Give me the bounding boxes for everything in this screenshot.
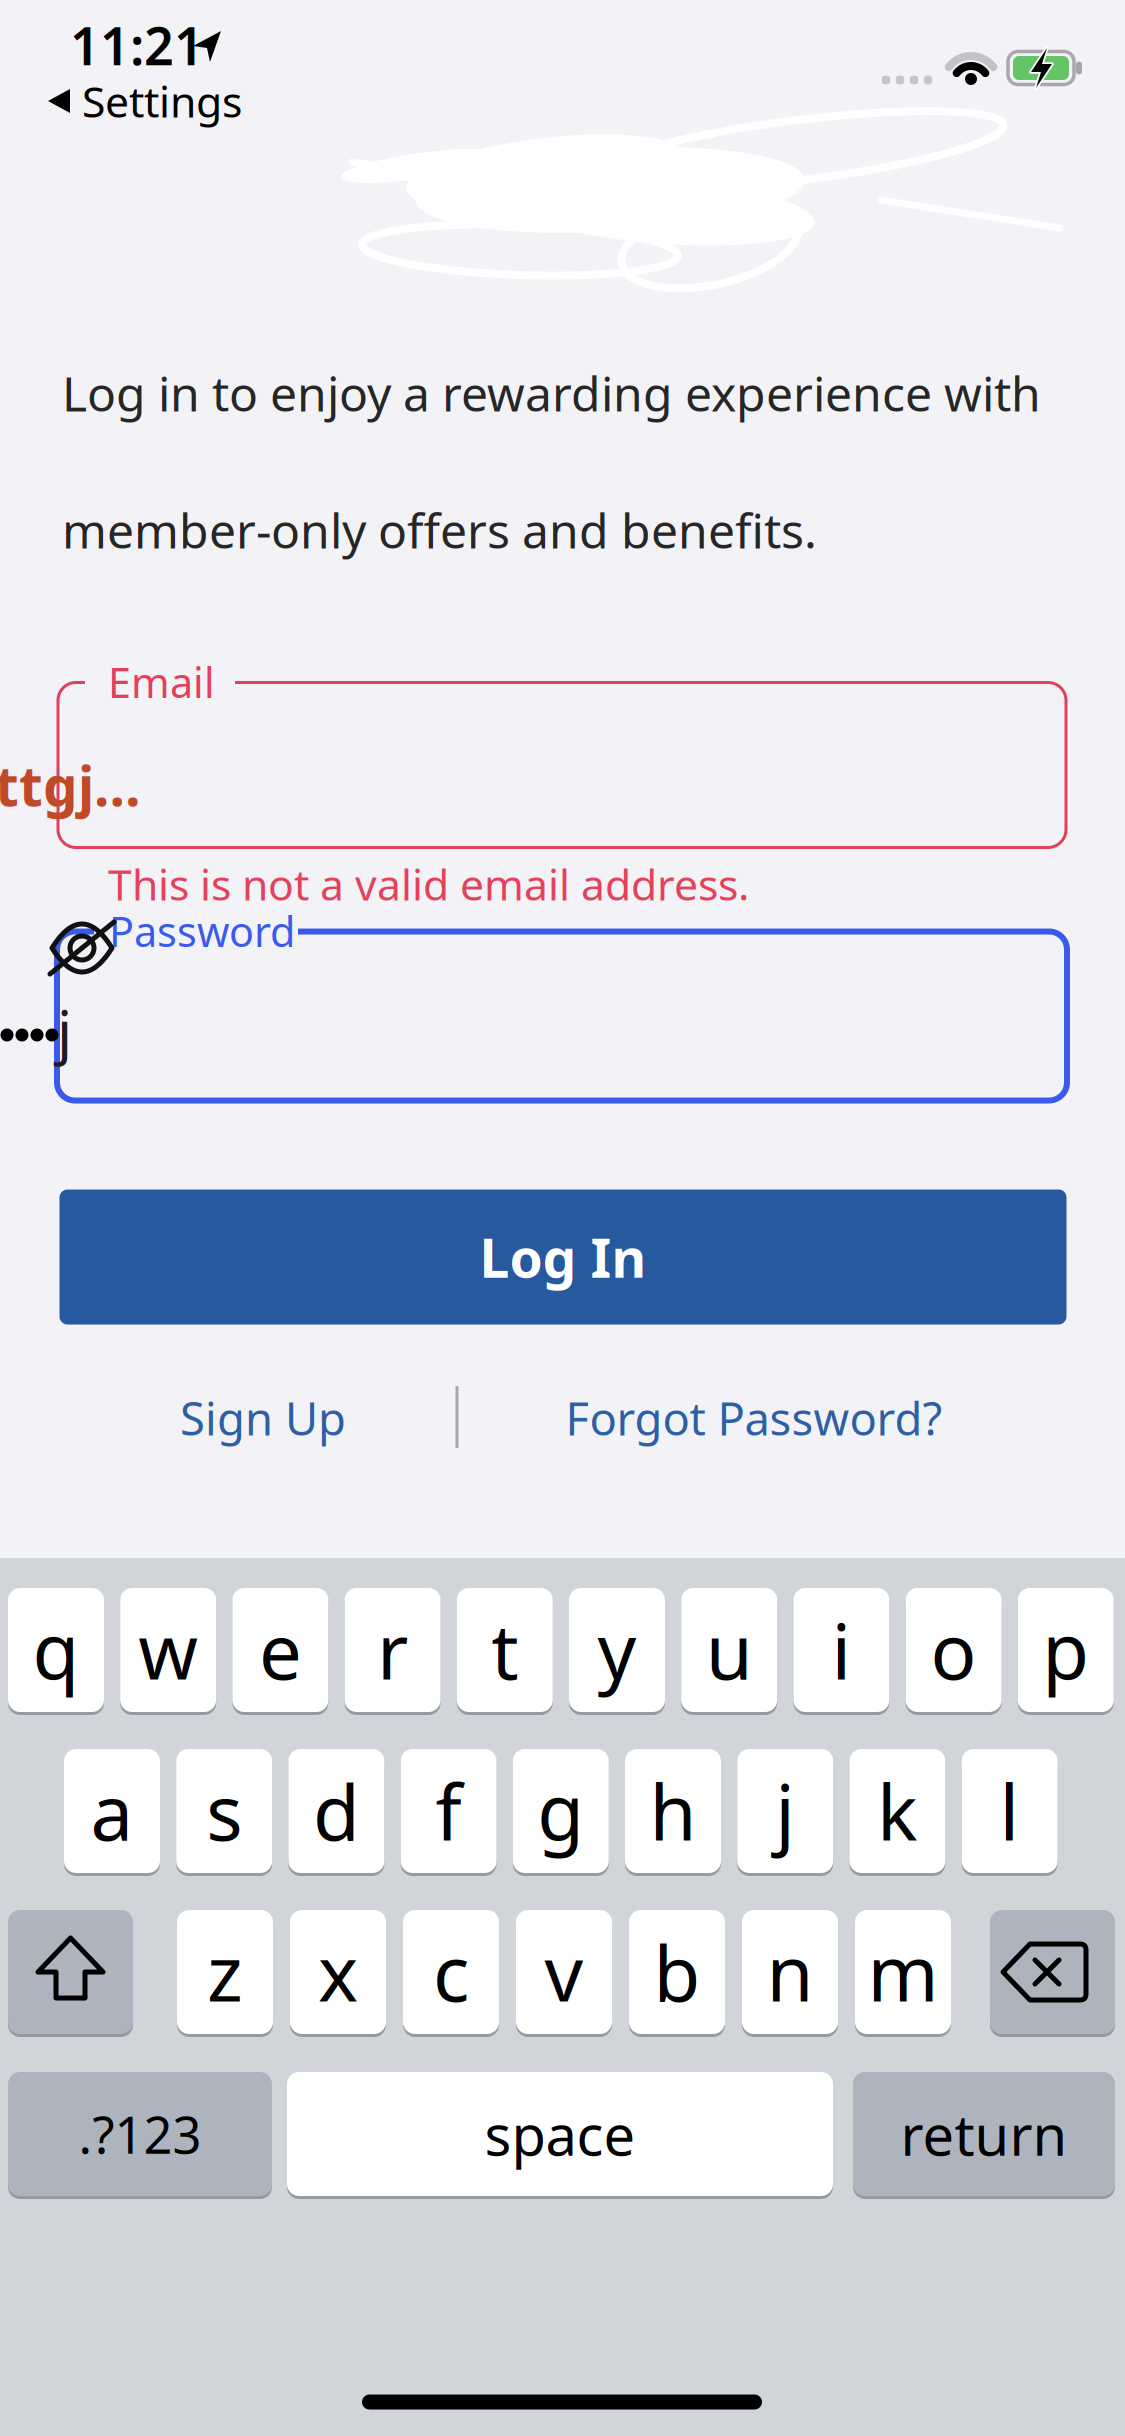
- button[interactable]: k: [849, 1747, 945, 1875]
- staticText: s: [206, 1760, 242, 1861]
- staticText: This is not a valid email address.: [108, 856, 749, 912]
- staticText: z: [207, 1921, 243, 2022]
- button[interactable]: g: [513, 1747, 609, 1875]
- button[interactable]: w: [120, 1586, 216, 1714]
- staticText: c: [433, 1921, 469, 2022]
- staticText: g: [537, 1760, 584, 1861]
- staticText: Log in to enjoy a rewarding experience w…: [62, 361, 1041, 425]
- button[interactable]: c: [403, 1908, 499, 2036]
- staticText: j: [57, 991, 72, 1069]
- staticText: o: [931, 1599, 977, 1700]
- staticText: x: [318, 1921, 358, 2022]
- button[interactable]: .?123: [8, 2070, 272, 2198]
- staticText: u: [706, 1599, 753, 1700]
- button[interactable]: p: [1018, 1586, 1114, 1714]
- staticText: Forgot Password?: [565, 1388, 942, 1448]
- button[interactable]: t: [457, 1586, 553, 1714]
- staticText: b: [653, 1921, 700, 2022]
- button[interactable]: v: [516, 1908, 612, 2036]
- staticText: Log In: [479, 1222, 646, 1292]
- button[interactable]: n: [742, 1908, 838, 2036]
- button[interactable]: x: [290, 1908, 386, 2036]
- staticText: .?123: [78, 2100, 201, 2168]
- staticText: f: [436, 1760, 462, 1861]
- button[interactable]: [990, 1908, 1115, 2036]
- staticText: e: [259, 1599, 302, 1700]
- staticText: r: [377, 1599, 408, 1700]
- button[interactable]: Forgot Password?: [565, 1388, 942, 1448]
- button[interactable]: s: [176, 1747, 272, 1875]
- button[interactable]: a: [64, 1747, 160, 1875]
- staticText: 11:21: [70, 10, 204, 80]
- button[interactable]: j: [737, 1747, 833, 1875]
- button[interactable]: Log In: [59, 1189, 1066, 1324]
- button[interactable]: o: [906, 1586, 1002, 1714]
- button[interactable]: h: [625, 1747, 721, 1875]
- button[interactable]: [8, 1908, 133, 2036]
- button[interactable]: l: [962, 1747, 1058, 1875]
- button[interactable]: q: [8, 1586, 104, 1714]
- staticText: Password: [109, 904, 295, 958]
- button[interactable]: z: [177, 1908, 273, 2036]
- button[interactable]: m: [855, 1908, 951, 2036]
- button[interactable]: u: [681, 1586, 777, 1714]
- button[interactable]: i: [793, 1586, 889, 1714]
- staticText: Email: [108, 655, 215, 709]
- staticText: w: [138, 1599, 198, 1700]
- staticText: space: [484, 2097, 635, 2171]
- button[interactable]: e: [232, 1586, 328, 1714]
- staticText: q: [32, 1599, 79, 1700]
- button[interactable]: [58, 682, 1066, 847]
- staticText: m: [867, 1921, 938, 2022]
- staticText: h: [649, 1760, 696, 1861]
- staticText: j: [775, 1760, 795, 1861]
- staticText: Sign Up: [180, 1388, 346, 1448]
- button[interactable]: [44, 916, 120, 980]
- staticText: k: [877, 1760, 918, 1861]
- staticText: member-only offers and benefits.: [62, 498, 817, 562]
- button[interactable]: y: [569, 1586, 665, 1714]
- staticText: ttgj…: [0, 749, 141, 821]
- staticText: d: [313, 1760, 360, 1861]
- button[interactable]: [57, 931, 1067, 1100]
- button[interactable]: f: [401, 1747, 497, 1875]
- button[interactable]: Settings: [48, 73, 242, 129]
- button[interactable]: d: [288, 1747, 384, 1875]
- staticText: i: [831, 1599, 851, 1700]
- staticText: return: [900, 2097, 1067, 2171]
- staticText: y: [597, 1599, 636, 1700]
- staticText: p: [1042, 1599, 1089, 1700]
- button[interactable]: return: [853, 2070, 1115, 2198]
- staticText: t: [491, 1599, 518, 1700]
- staticText: l: [1000, 1760, 1020, 1861]
- button[interactable]: b: [629, 1908, 725, 2036]
- staticText: Settings: [82, 73, 242, 129]
- staticText: a: [90, 1760, 133, 1861]
- button[interactable]: r: [345, 1586, 441, 1714]
- button[interactable]: space: [287, 2070, 833, 2198]
- staticText: n: [766, 1921, 813, 2022]
- staticText: v: [544, 1921, 583, 2022]
- button[interactable]: Sign Up: [180, 1388, 346, 1448]
